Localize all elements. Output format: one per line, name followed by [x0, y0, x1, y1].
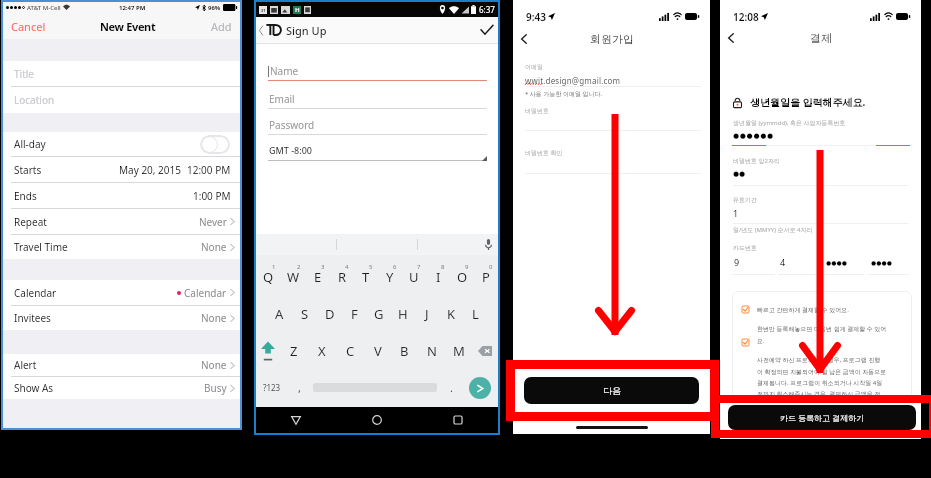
button[interactable]: ,	[288, 369, 310, 406]
button[interactable]: J	[415, 295, 439, 332]
button[interactable]: Ends	[3, 183, 240, 208]
button[interactable]: GMT -8:00	[268, 144, 487, 161]
staticText: ?123	[263, 382, 281, 393]
button[interactable]: 카드 등록하고 결제하기	[728, 405, 916, 430]
staticText: Alert	[14, 358, 37, 372]
button[interactable]: Email	[268, 92, 487, 109]
button[interactable]: Starts	[3, 157, 240, 182]
button[interactable]: X	[308, 332, 336, 369]
staticText: 사전예약 하신 프로그램의 경우, 프로그램 진행 이 확정되면 지불되어야 할…	[757, 356, 912, 397]
staticText: F	[351, 305, 358, 323]
staticText: 0	[489, 263, 493, 271]
button[interactable]: K	[439, 295, 463, 332]
button[interactable]: Cancel	[3, 19, 50, 34]
button[interactable]: 5	[354, 258, 378, 295]
staticText: 3	[321, 263, 325, 271]
staticText: 9	[734, 256, 740, 268]
button[interactable]: 3	[306, 258, 330, 295]
staticText: Starts	[14, 163, 42, 177]
button[interactable]: 4	[330, 258, 354, 295]
button[interactable]: Backspace	[472, 332, 498, 369]
button[interactable]: Back	[513, 34, 535, 44]
staticText: 7	[417, 263, 421, 271]
staticText: 9	[465, 263, 469, 271]
button[interactable]: Back	[256, 26, 266, 35]
button[interactable]: 9	[450, 258, 474, 295]
button[interactable]: N	[418, 332, 445, 369]
button[interactable]: G	[367, 295, 391, 332]
staticText: 유효기간	[733, 196, 757, 204]
button[interactable]: Back	[720, 33, 742, 43]
button[interactable]: .	[440, 369, 462, 406]
staticText: Calendar	[184, 286, 227, 300]
button[interactable]: Name	[268, 64, 487, 81]
staticText: Title	[14, 67, 34, 81]
button[interactable]: Alert	[3, 354, 240, 376]
staticText: Password	[269, 118, 315, 132]
staticText: X	[318, 342, 326, 360]
staticText: 6:37	[479, 4, 495, 15]
button[interactable]: Invitees	[3, 306, 240, 330]
button[interactable]: M	[445, 332, 472, 369]
staticText: Y	[386, 268, 394, 286]
button[interactable]: Confirm	[476, 25, 498, 35]
staticText: 96%	[208, 4, 221, 12]
button[interactable]: Password	[268, 118, 487, 135]
button[interactable]: V	[364, 332, 391, 369]
button[interactable]: Travel Time	[3, 235, 240, 259]
button[interactable]: F	[342, 295, 367, 332]
button[interactable]: L	[463, 295, 487, 332]
button[interactable]: Recents	[417, 407, 498, 433]
button[interactable]: Add	[207, 19, 240, 34]
button[interactable]: Show As	[3, 377, 240, 399]
staticText: 카드번호	[733, 244, 757, 252]
button[interactable]: 1	[256, 258, 281, 295]
button[interactable]: H	[391, 295, 415, 332]
button[interactable]: Back	[256, 407, 336, 433]
staticText: None	[201, 240, 227, 254]
staticText: 6	[393, 263, 397, 271]
button[interactable]: Z	[280, 332, 308, 369]
button[interactable]: 2	[281, 258, 306, 295]
staticText: 카드 등록하고 결제하기	[780, 412, 865, 423]
staticText: W	[287, 268, 300, 286]
button[interactable]: 8	[426, 258, 450, 295]
button[interactable]: 다음	[524, 377, 699, 404]
staticText: 비밀번호	[525, 107, 549, 115]
button[interactable]: A	[267, 295, 292, 332]
staticText: Q	[263, 268, 274, 286]
staticText: 5	[369, 263, 373, 271]
staticText: V	[374, 342, 382, 360]
staticText: 생년월일 (yymmdd), 혹은 사업자등록번호	[733, 119, 846, 127]
button[interactable]: Repeat	[3, 209, 240, 234]
staticText: C	[346, 342, 355, 360]
staticText: 9:43	[526, 10, 546, 24]
staticText: Sign Up	[286, 23, 327, 38]
staticText: 31	[261, 8, 266, 13]
button[interactable]: 6	[378, 258, 402, 295]
button[interactable]: S	[292, 295, 317, 332]
button[interactable]: All-day	[3, 132, 240, 156]
staticText: ● ● ● ● ● ●	[733, 131, 774, 141]
button[interactable]: Location	[3, 87, 240, 113]
staticText: H	[295, 6, 300, 14]
staticText: 4	[345, 263, 349, 271]
staticText: Show As	[14, 381, 54, 395]
button[interactable]: B	[391, 332, 418, 369]
button[interactable]: Next	[469, 377, 491, 399]
staticText: .	[450, 380, 453, 395]
button[interactable]: Title	[3, 61, 240, 86]
button[interactable]: C	[336, 332, 364, 369]
staticText: 1	[733, 207, 739, 219]
staticText: Ends	[14, 189, 37, 203]
button[interactable]: Home	[336, 407, 417, 433]
staticText: Travel Time	[14, 240, 68, 254]
button[interactable]: D	[317, 295, 342, 332]
button[interactable]: 0	[474, 258, 498, 295]
button[interactable]: Shift	[256, 332, 280, 369]
button[interactable]: Calendar	[3, 280, 240, 305]
button[interactable]: 7	[402, 258, 426, 295]
staticText: Never	[199, 215, 227, 229]
button[interactable]: ?123	[256, 369, 288, 406]
